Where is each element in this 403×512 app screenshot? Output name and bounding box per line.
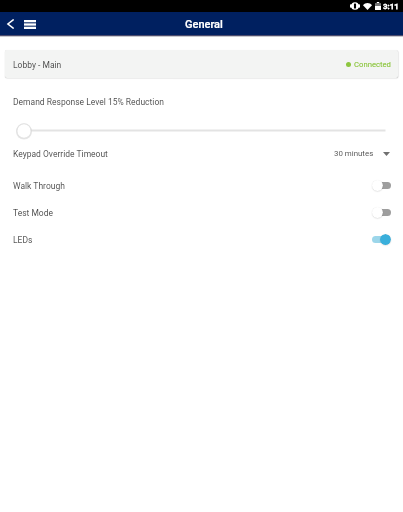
staticText: Walk Through	[13, 181, 65, 191]
button[interactable]: Test Mode	[0, 204, 403, 221]
staticText: 3:11	[383, 2, 399, 11]
button[interactable]: Menu	[21, 15, 38, 32]
staticText: Demand Response Level 15% Reduction	[13, 97, 164, 107]
staticText: Connected	[354, 60, 391, 69]
staticText: Test Mode	[13, 208, 54, 218]
button[interactable]: Keypad Override Timeout	[0, 145, 403, 162]
button[interactable]: Demand response level slider	[16, 123, 32, 139]
button[interactable]: Back	[2, 16, 18, 32]
staticText: General	[185, 18, 223, 31]
staticText: LEDs	[13, 235, 33, 245]
staticText: 30 minutes	[334, 149, 374, 158]
staticText: Keypad Override Timeout	[13, 149, 108, 159]
button[interactable]: Lobby - Main	[5, 50, 398, 78]
staticText: Lobby - Main	[13, 60, 62, 70]
button[interactable]: LEDs	[0, 231, 403, 248]
button[interactable]: Walk Through	[0, 177, 403, 194]
